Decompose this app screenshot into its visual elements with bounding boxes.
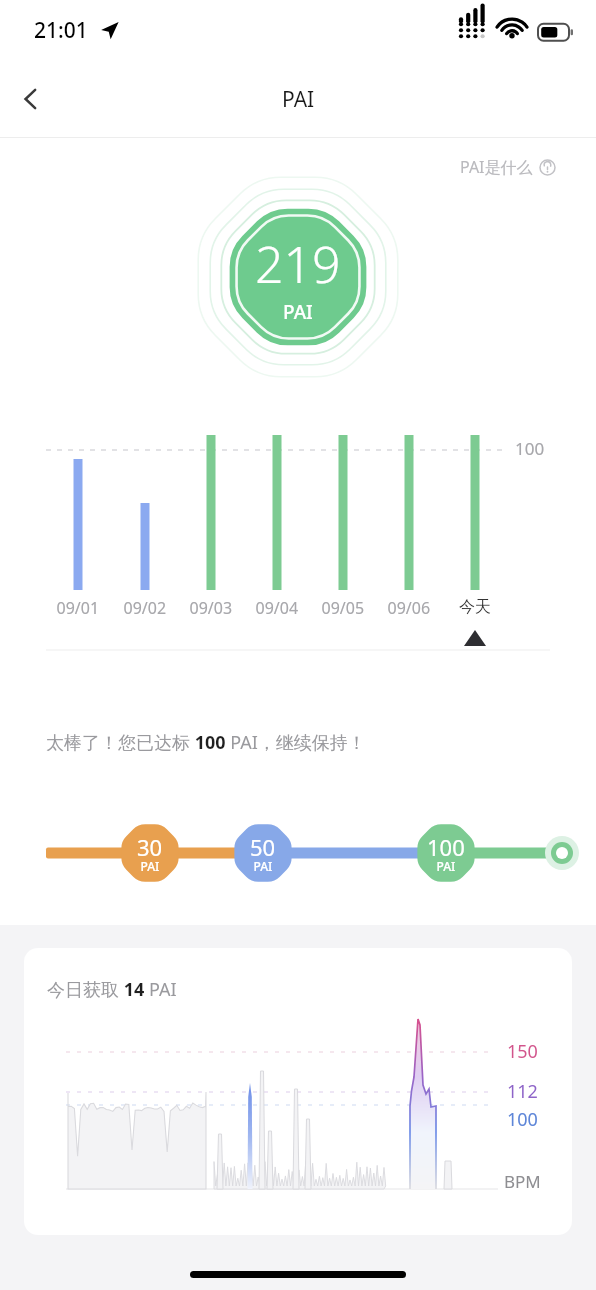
staticText: PAI是什么: [460, 156, 533, 178]
staticText: 219: [255, 230, 341, 298]
staticText: 太棒了！您已达标 100 PAI，继续保持！: [46, 730, 366, 755]
staticText: 今日获取 14 PAI: [47, 977, 177, 1002]
button[interactable]: 今日获取 14 PAI: [24, 948, 572, 1235]
staticText: PAI: [283, 299, 313, 325]
button[interactable]: PAI是什么: [456, 153, 560, 181]
button[interactable]: Back: [0, 68, 62, 130]
staticText: PAI: [282, 85, 315, 114]
staticText: 21:01: [34, 16, 88, 45]
